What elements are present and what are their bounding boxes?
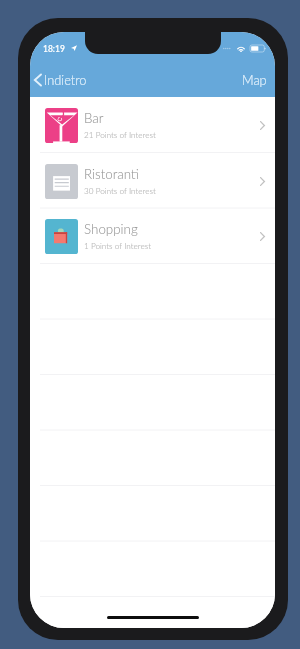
- staticText: 1 Points of Interest: [84, 241, 151, 251]
- staticText: 18:19: [43, 44, 65, 54]
- staticText: Bar: [84, 110, 104, 126]
- button[interactable]: Indietro: [30, 69, 95, 90]
- staticText: Map: [242, 72, 267, 87]
- other: Ristoranti: [45, 164, 78, 199]
- button[interactable]: [30, 597, 275, 628]
- staticText: 21 Points of Interest: [84, 130, 156, 140]
- button[interactable]: Bar: [30, 97, 275, 153]
- other: Shopping: [45, 219, 78, 254]
- staticText: Shopping: [84, 221, 138, 237]
- button[interactable]: Map: [233, 69, 275, 90]
- other: Bar: [45, 108, 78, 143]
- staticText: Ristoranti: [84, 166, 139, 182]
- button[interactable]: Shopping: [30, 208, 275, 264]
- staticText: 30 Points of Interest: [84, 186, 156, 196]
- staticText: Indietro: [44, 72, 87, 87]
- button[interactable]: Ristoranti: [30, 153, 275, 209]
